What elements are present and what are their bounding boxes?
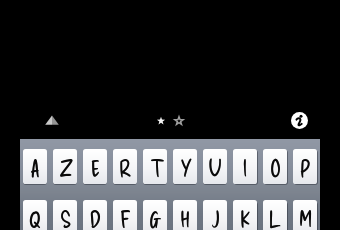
button[interactable]: T [143, 149, 167, 184]
button[interactable]: G [143, 200, 167, 230]
staticText: H [180, 206, 190, 230]
staticText: S [60, 206, 71, 230]
staticText: T [150, 155, 161, 181]
staticText: A [30, 155, 40, 181]
staticText: R [119, 155, 131, 181]
staticText: R [119, 155, 131, 181]
button[interactable]: P [293, 149, 317, 184]
staticText: I [243, 155, 247, 181]
staticText: Y [180, 155, 190, 181]
staticText: H [180, 206, 190, 230]
button[interactable]: L [263, 200, 287, 230]
button[interactable]: Info [291, 112, 308, 129]
staticText: L [269, 206, 281, 230]
staticText: M [299, 206, 312, 230]
staticText: G [149, 206, 161, 230]
staticText: Y [180, 155, 190, 181]
staticText: J [211, 206, 220, 230]
staticText: M [299, 206, 312, 230]
button[interactable]: M [293, 200, 317, 230]
staticText: F [120, 206, 130, 230]
button[interactable]: D [83, 200, 107, 230]
staticText: E [91, 155, 100, 181]
button[interactable]: S [53, 200, 77, 230]
staticText: E [91, 155, 100, 181]
button[interactable]: F [113, 200, 137, 230]
button[interactable]: Q [23, 200, 47, 230]
button[interactable]: I [233, 149, 257, 184]
button[interactable]: O [263, 149, 287, 184]
staticText: Z [59, 155, 72, 181]
button[interactable]: R [113, 149, 137, 184]
button[interactable]: Y [173, 149, 197, 184]
button[interactable]: Rate [172, 114, 186, 128]
button[interactable]: A [23, 149, 47, 184]
button[interactable]: E [83, 149, 107, 184]
staticText: D [90, 206, 101, 230]
staticText: A [30, 155, 40, 181]
staticText: Q [29, 206, 41, 230]
staticText: Z [59, 155, 72, 181]
staticText: K [240, 206, 250, 230]
button[interactable]: Z [53, 149, 77, 184]
staticText: P [300, 155, 310, 181]
staticText: K [240, 206, 250, 230]
staticText: T [150, 155, 161, 181]
button[interactable]: K [233, 200, 257, 230]
staticText: U [208, 155, 222, 181]
staticText: O [270, 155, 281, 181]
staticText: O [270, 155, 281, 181]
staticText: S [60, 206, 71, 230]
staticText: F [120, 206, 130, 230]
button[interactable]: Expand [42, 111, 62, 128]
button[interactable]: Favourite [154, 114, 168, 128]
staticText: Q [29, 206, 41, 230]
staticText: P [300, 155, 310, 181]
staticText: D [90, 206, 101, 230]
staticText: G [149, 206, 161, 230]
button[interactable]: J [203, 200, 227, 230]
staticText: L [269, 206, 281, 230]
button[interactable]: H [173, 200, 197, 230]
staticText: J [211, 206, 220, 230]
staticText: I [243, 155, 247, 181]
button[interactable]: U [203, 149, 227, 184]
staticText: U [208, 155, 222, 181]
